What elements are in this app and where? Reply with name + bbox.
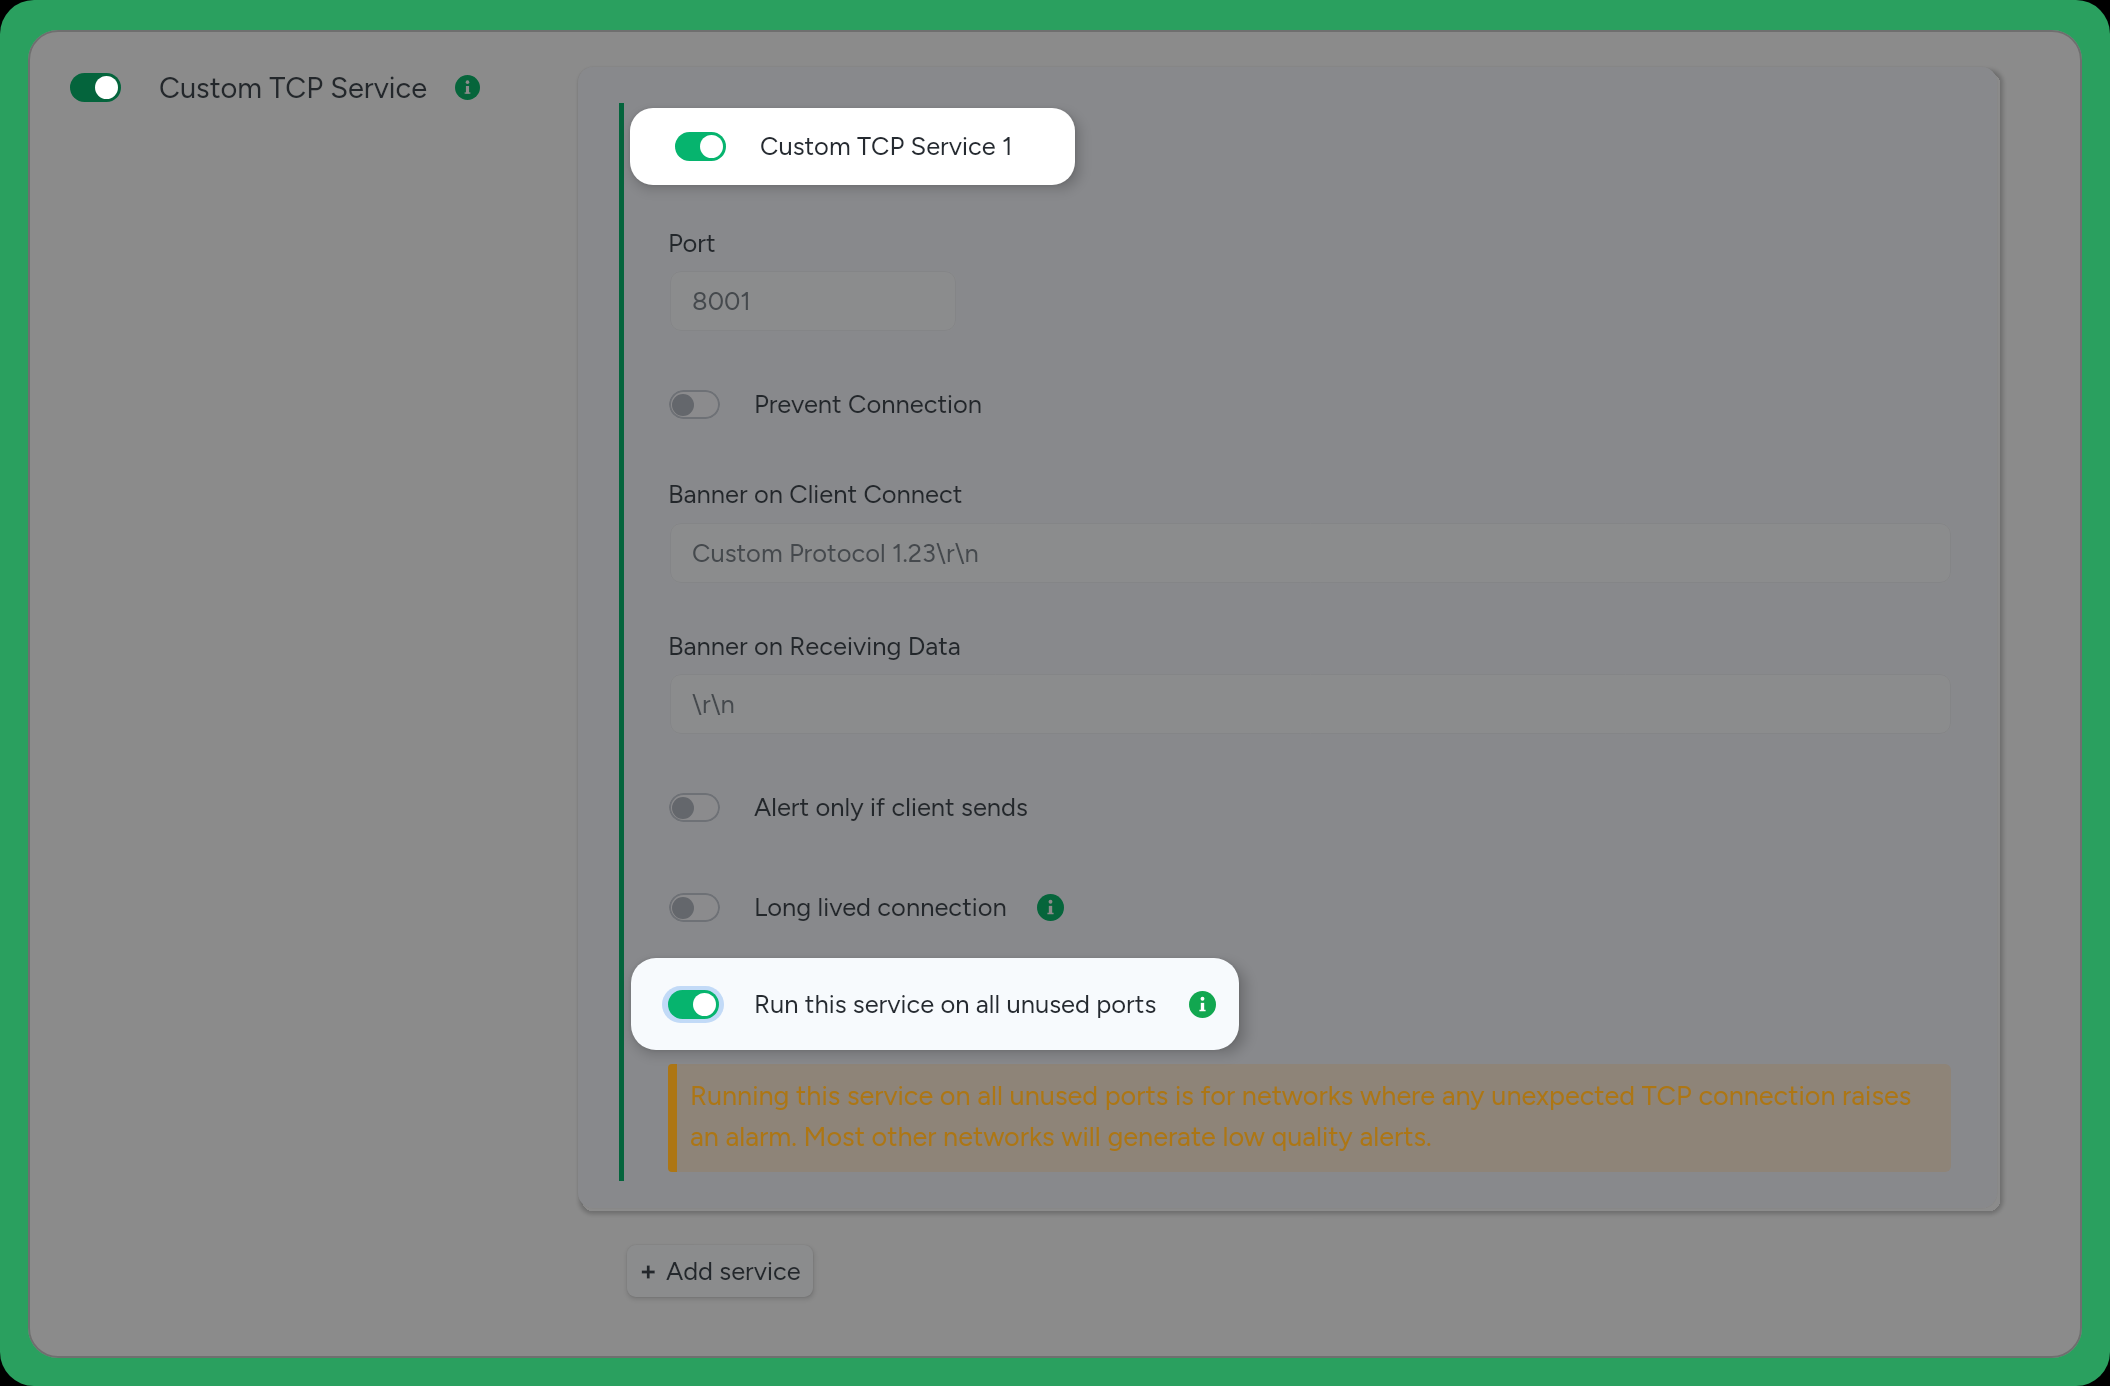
button[interactable]: Enabled bbox=[70, 67, 480, 107]
staticText: Prevent Connection bbox=[754, 389, 983, 420]
staticText: Long lived connection bbox=[754, 892, 1007, 923]
button[interactable]: Enabled bbox=[631, 958, 1239, 1050]
staticText: Running this service on all unused ports… bbox=[690, 1079, 1912, 1153]
button[interactable]: Disabled bbox=[669, 787, 1028, 827]
staticText: 8001 bbox=[692, 286, 751, 317]
staticText: \r\n bbox=[692, 689, 735, 720]
button[interactable]: Disabled bbox=[669, 887, 1064, 927]
button[interactable]: Disabled bbox=[669, 390, 720, 419]
button[interactable]: Enabled bbox=[668, 990, 719, 1019]
button[interactable]: 8001 bbox=[670, 271, 956, 331]
staticText: Banner on Client Connect bbox=[668, 479, 963, 510]
button[interactable]: Enabled bbox=[675, 132, 726, 161]
staticText: Run this service on all unused ports bbox=[754, 989, 1157, 1020]
button[interactable]: More information bbox=[1037, 894, 1064, 921]
staticText: Port bbox=[668, 228, 716, 259]
button[interactable]: Enabled bbox=[70, 73, 121, 102]
button[interactable]: Disabled bbox=[669, 893, 720, 922]
button[interactable]: Disabled bbox=[669, 793, 720, 822]
staticText: Alert only if client sends bbox=[754, 792, 1028, 823]
button[interactable]: Custom Protocol 1.23\r\n bbox=[670, 523, 1951, 583]
staticText: Custom TCP Service bbox=[159, 70, 428, 105]
button[interactable]: Enabled bbox=[630, 108, 1075, 185]
button[interactable]: Disabled bbox=[669, 384, 983, 424]
staticText: Add service bbox=[666, 1256, 801, 1287]
button[interactable]: More information bbox=[455, 75, 480, 100]
staticText: + bbox=[640, 1255, 657, 1287]
button[interactable]: + bbox=[627, 1245, 813, 1297]
staticText: Custom Protocol 1.23\r\n bbox=[692, 538, 979, 569]
staticText: Custom TCP Service 1 bbox=[760, 131, 1013, 162]
button[interactable]: More information bbox=[1189, 991, 1216, 1018]
staticText: Banner on Receiving Data bbox=[668, 631, 961, 662]
button[interactable]: \r\n bbox=[670, 674, 1951, 734]
